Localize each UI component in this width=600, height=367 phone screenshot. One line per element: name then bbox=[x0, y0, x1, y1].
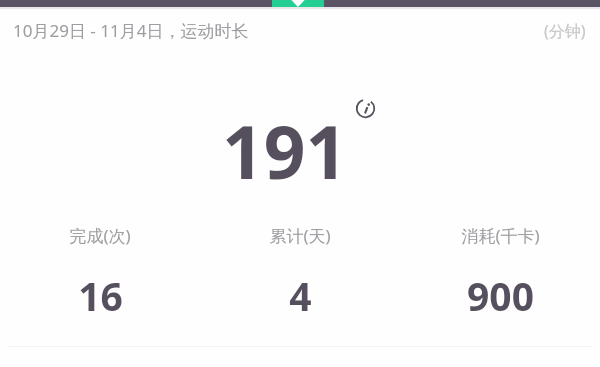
button[interactable]: 完成(次) bbox=[0, 220, 200, 322]
staticText: 191 bbox=[222, 101, 348, 200]
staticText: 900 bbox=[467, 269, 534, 322]
staticText: 10月29日 - 11月4日，运动时长 bbox=[13, 19, 249, 42]
button[interactable]: 消耗(千卡) bbox=[400, 220, 600, 322]
staticText: 消耗(千卡) bbox=[461, 224, 540, 247]
staticText: 4 bbox=[289, 269, 312, 322]
staticText: 累计(天) bbox=[269, 224, 331, 247]
staticText: 完成(次) bbox=[69, 224, 131, 247]
button[interactable]: 累计(天) bbox=[200, 220, 400, 322]
button[interactable]: Info about exercise duration bbox=[352, 95, 378, 121]
staticText: 16 bbox=[78, 269, 123, 322]
staticText: (分钟) bbox=[544, 20, 586, 42]
